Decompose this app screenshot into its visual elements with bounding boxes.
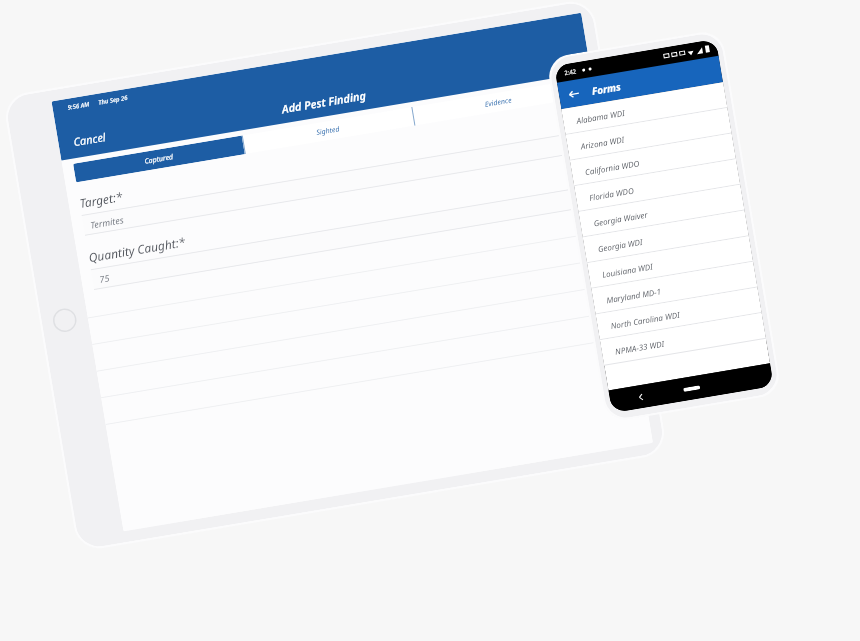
button[interactable]: Back xyxy=(562,83,584,105)
button[interactable]: Maryland MD-1 xyxy=(591,262,757,314)
button[interactable]: Florida WDO xyxy=(574,159,740,212)
button[interactable]: Louisiana WDI xyxy=(587,236,753,289)
staticText: Alabama WDI xyxy=(575,107,626,126)
button[interactable]: Captured xyxy=(73,135,245,182)
button[interactable]: Georgia Waiver xyxy=(578,185,744,238)
button[interactable]: Alabama WDI xyxy=(561,82,727,135)
staticText: Captured xyxy=(144,152,174,167)
button[interactable]: Georgia WDI xyxy=(583,210,749,263)
button[interactable]: Home xyxy=(51,306,78,334)
staticText: Arizona WDI xyxy=(580,133,625,152)
button[interactable]: Home xyxy=(683,385,700,392)
button[interactable]: Arizona WDI xyxy=(566,108,732,161)
staticText: Florida WDO xyxy=(588,185,635,203)
staticText: 2:42 xyxy=(564,67,577,77)
button[interactable]: Termites xyxy=(82,130,593,236)
staticText: Louisiana WDI xyxy=(601,260,654,280)
staticText: Maryland MD-1 xyxy=(605,285,662,305)
button[interactable]: 75 xyxy=(91,184,602,290)
button[interactable]: Back xyxy=(633,389,649,405)
button[interactable]: NPMA-33 WDI xyxy=(600,313,766,366)
staticText: Georgia WDI xyxy=(597,236,644,254)
staticText: Georgia Waiver xyxy=(593,209,649,228)
staticText: Evidence xyxy=(484,95,512,110)
staticText: Termites xyxy=(89,213,125,231)
staticText: California WDO xyxy=(584,157,640,177)
staticText: Cancel xyxy=(72,129,107,149)
staticText: Sighted xyxy=(315,124,341,138)
button[interactable]: California WDO xyxy=(570,134,736,186)
staticText: Quantity Caught:* xyxy=(87,233,187,265)
staticText: NPMA-33 WDI xyxy=(614,338,665,357)
staticText: North Carolina WDI xyxy=(610,309,681,331)
staticText: 75 xyxy=(98,271,110,285)
staticText: Add Pest Finding xyxy=(281,88,367,116)
button[interactable]: Evidence xyxy=(411,79,584,126)
button[interactable]: Cancel xyxy=(66,125,114,153)
staticText: Forms xyxy=(591,79,622,98)
button[interactable]: North Carolina WDI xyxy=(596,287,762,340)
staticText: 9:56 AM xyxy=(67,100,90,112)
staticText: Thu Sep 26 xyxy=(98,94,129,107)
staticText: Target:* xyxy=(78,188,124,211)
button[interactable]: Sighted xyxy=(242,107,414,154)
